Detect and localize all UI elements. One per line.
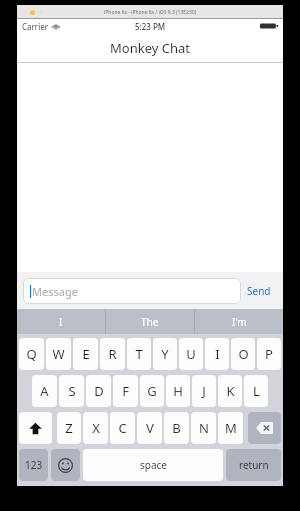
staticText: M: [225, 419, 237, 437]
staticText: Y: [161, 345, 169, 363]
button[interactable]: N: [191, 412, 216, 444]
staticText: D: [94, 382, 104, 400]
staticText: U: [186, 345, 196, 363]
button[interactable]: Q: [19, 338, 44, 370]
staticText: P: [265, 345, 273, 363]
staticText: G: [147, 382, 157, 400]
staticText: R: [108, 345, 117, 363]
button[interactable]: T: [127, 338, 151, 370]
staticText: F: [122, 382, 129, 400]
staticText: W: [52, 345, 65, 363]
button[interactable]: G: [140, 375, 164, 407]
button[interactable]: R: [100, 338, 125, 370]
button[interactable]: O: [231, 338, 255, 370]
staticText: N: [199, 419, 209, 437]
button[interactable]: Shift: [19, 412, 52, 444]
staticText: O: [238, 345, 249, 363]
button[interactable]: Y: [153, 338, 177, 370]
button[interactable]: The: [106, 309, 194, 334]
staticText: Message: [32, 284, 78, 299]
staticText: T: [135, 345, 143, 363]
staticText: iPhone 6s - iPhone 6s / iOS 9.3 (13E230): [104, 9, 197, 16]
button[interactable]: W: [46, 338, 71, 370]
button[interactable]: Message: [23, 278, 241, 304]
button[interactable]: 123: [19, 449, 48, 481]
button[interactable]: Emoji: [51, 449, 80, 481]
button[interactable]: L: [244, 375, 268, 407]
staticText: I'm: [232, 315, 247, 329]
button[interactable]: I: [205, 338, 229, 370]
staticText: H: [173, 382, 183, 400]
staticText: B: [172, 419, 181, 437]
staticText: I: [215, 345, 220, 363]
button[interactable]: M: [218, 412, 243, 444]
button[interactable]: space: [83, 449, 223, 481]
staticText: I: [59, 315, 63, 329]
staticText: The: [141, 315, 159, 329]
button[interactable]: H: [166, 375, 190, 407]
staticText: C: [118, 419, 127, 437]
button[interactable]: K: [218, 375, 242, 407]
staticText: S: [68, 382, 76, 400]
staticText: X: [92, 419, 100, 437]
staticText: Q: [26, 345, 37, 363]
staticText: space: [140, 458, 167, 472]
staticText: A: [40, 382, 49, 400]
button[interactable]: F: [113, 375, 138, 407]
staticText: 5:23 PM: [135, 21, 166, 32]
button[interactable]: I: [17, 309, 105, 334]
button[interactable]: V: [137, 412, 162, 444]
staticText: Carrier: [22, 21, 49, 32]
staticText: V: [146, 419, 154, 437]
button[interactable]: A: [32, 375, 57, 407]
button[interactable]: J: [192, 375, 216, 407]
button[interactable]: return: [226, 449, 281, 481]
staticText: Z: [65, 419, 73, 437]
button[interactable]: D: [86, 375, 111, 407]
button[interactable]: I'm: [195, 309, 283, 334]
button[interactable]: C: [110, 412, 135, 444]
staticText: L: [253, 382, 260, 400]
button[interactable]: P: [257, 338, 281, 370]
button[interactable]: Z: [57, 412, 81, 444]
staticText: K: [226, 382, 235, 400]
staticText: Send: [247, 284, 271, 298]
button[interactable]: Send: [241, 272, 277, 309]
staticText: J: [202, 382, 206, 400]
button[interactable]: E: [73, 338, 98, 370]
staticText: E: [82, 345, 90, 363]
button[interactable]: X: [83, 412, 108, 444]
button[interactable]: B: [164, 412, 189, 444]
button[interactable]: U: [179, 338, 203, 370]
staticText: return: [239, 458, 269, 472]
button[interactable]: Backspace: [248, 412, 281, 444]
staticText: Monkey Chat: [110, 39, 190, 57]
button[interactable]: S: [59, 375, 84, 407]
staticText: 123: [25, 458, 43, 472]
